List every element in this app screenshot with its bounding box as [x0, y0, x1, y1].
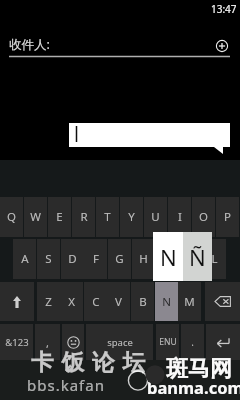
staticText: Q [7, 209, 16, 225]
button[interactable]: Comma [35, 324, 60, 360]
staticText: A [21, 251, 29, 267]
button[interactable]: C [84, 282, 107, 321]
button[interactable]: Z [37, 282, 60, 321]
staticText: R [80, 209, 88, 225]
button[interactable]: R [72, 197, 95, 237]
staticText: space [107, 336, 133, 349]
button[interactable]: Ñ [183, 232, 212, 281]
button[interactable]: B [131, 282, 154, 321]
staticText: O [199, 209, 208, 225]
button[interactable]: M [178, 282, 201, 321]
button[interactable]: G [108, 239, 131, 279]
staticText: P [224, 209, 231, 225]
staticText: T [104, 209, 111, 225]
staticText: Y [128, 209, 135, 225]
button[interactable]: I [168, 197, 191, 237]
staticText: I [178, 209, 182, 225]
staticText: . [191, 335, 194, 349]
button[interactable]: O [192, 197, 215, 237]
button[interactable]: Enter [206, 324, 240, 360]
staticText: E [56, 209, 63, 225]
staticText: X [68, 294, 75, 310]
button[interactable]: E [48, 197, 71, 237]
staticText: Z [45, 294, 52, 310]
button[interactable]: space [86, 324, 153, 360]
button[interactable]: U [144, 197, 167, 237]
staticText: ENU [159, 336, 177, 348]
staticText: bbs.kafan [27, 375, 105, 395]
staticText: 13:47 [211, 2, 237, 16]
staticText: S [45, 251, 52, 267]
staticText: N [162, 294, 171, 310]
button[interactable]: K [180, 239, 203, 279]
staticText: M [184, 294, 195, 310]
staticText: N [160, 242, 177, 272]
staticText: banma.com [147, 376, 240, 398]
button[interactable]: A [13, 239, 36, 279]
button[interactable]: T [96, 197, 119, 237]
button[interactable]: Add recipient [214, 38, 230, 54]
staticText: U [151, 209, 160, 225]
staticText: 斑马网 [166, 355, 232, 383]
button[interactable]: X [60, 282, 83, 321]
staticText: Ñ [189, 242, 206, 272]
staticText: B [139, 294, 147, 310]
staticText: H [139, 251, 148, 267]
button[interactable]: W [24, 197, 47, 237]
button[interactable]: Emoji [62, 324, 84, 360]
button[interactable]: &123 [0, 324, 33, 360]
button[interactable]: L [203, 239, 226, 279]
staticText: , [46, 335, 49, 350]
staticText: D [68, 251, 77, 267]
button[interactable]: H [132, 239, 155, 279]
button[interactable]: P [216, 197, 239, 237]
staticText: F [93, 251, 99, 267]
button[interactable]: V [107, 282, 130, 321]
staticText: 收件人: [9, 36, 50, 53]
button[interactable]: 收件人: [0, 36, 200, 58]
button[interactable]: Backspace [205, 282, 240, 321]
button[interactable]: D [61, 239, 84, 279]
button[interactable]: N [153, 232, 183, 281]
staticText: W [30, 209, 41, 225]
button[interactable]: J [156, 239, 179, 279]
staticText: K [188, 251, 196, 267]
button[interactable]: Q [0, 197, 23, 237]
staticText: V [115, 294, 122, 310]
button[interactable]: N [155, 282, 178, 321]
button[interactable]: Y [120, 197, 143, 237]
staticText: L [211, 251, 218, 267]
staticText: J [166, 251, 170, 267]
button[interactable]: Shift [0, 282, 34, 321]
staticText: 卡饭论坛 [27, 348, 149, 376]
staticText: &123 [5, 336, 29, 349]
button[interactable]: F [84, 239, 107, 279]
staticText: C [92, 294, 100, 310]
button[interactable]: S [37, 239, 60, 279]
button[interactable]: ENU [156, 324, 179, 360]
button[interactable]: . [181, 324, 204, 360]
staticText: G [115, 251, 124, 267]
